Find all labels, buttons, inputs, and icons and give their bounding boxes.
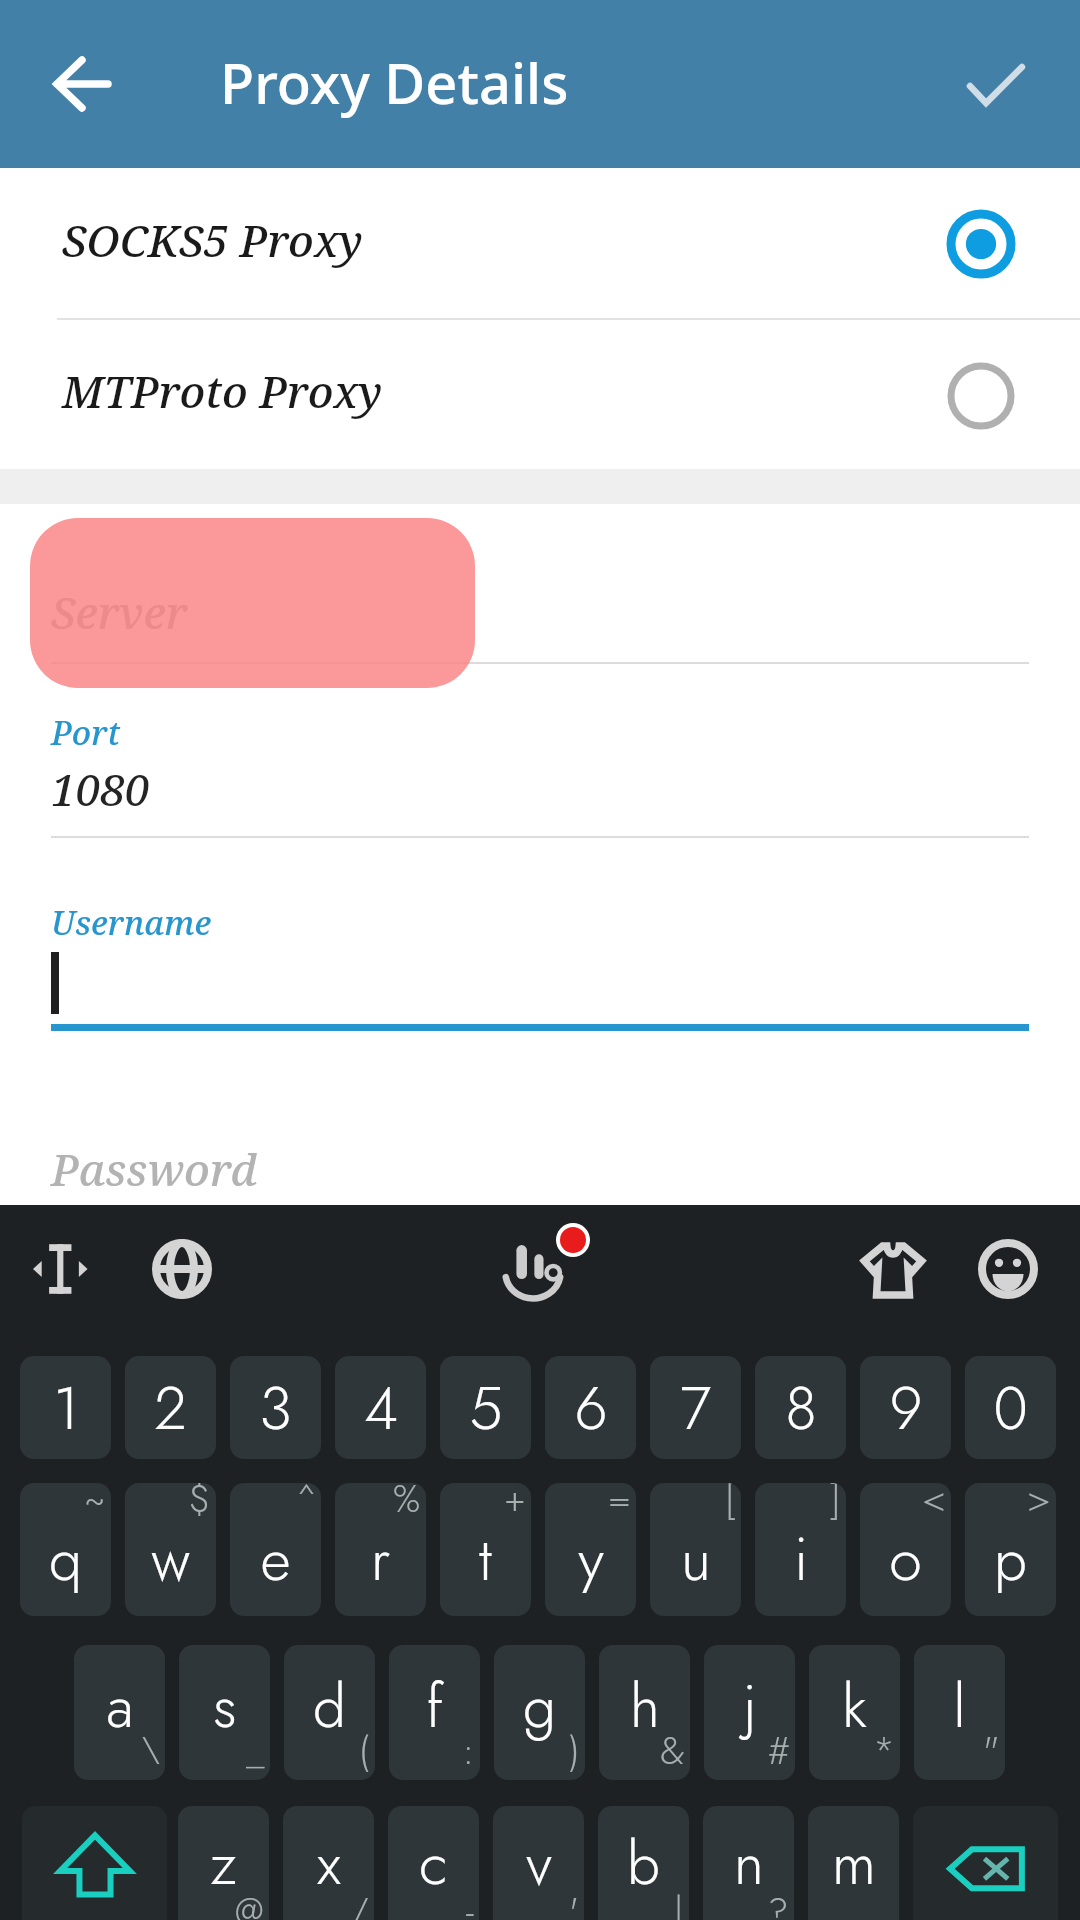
staticText: p [994,1517,1027,1602]
button[interactable]: MTProto Proxy [0,320,1080,470]
button[interactable]: c [388,1806,479,1920]
button[interactable]: 4 [335,1356,426,1459]
button[interactable]: f [389,1645,480,1780]
staticText: w [151,1517,190,1602]
button[interactable]: m [808,1806,899,1920]
button[interactable]: x [283,1806,374,1920]
staticText: ] [830,1483,841,1525]
staticText: 0 [993,1366,1028,1451]
staticText: a [106,1664,134,1749]
button[interactable]: n [703,1806,794,1920]
button[interactable]: o [860,1483,951,1616]
staticText: 3 [259,1366,292,1451]
button[interactable]: e [230,1483,321,1616]
staticText: b [627,1821,660,1906]
staticText: d [313,1664,346,1749]
button[interactable]: s [179,1645,270,1780]
button[interactable]: g [494,1645,585,1780]
staticText: > [1027,1483,1051,1525]
button[interactable]: t [440,1483,531,1616]
button[interactable]: Backspace [913,1806,1058,1920]
button[interactable]: 6 [545,1356,636,1459]
button[interactable]: Save [948,36,1044,132]
staticText: Username [51,900,212,945]
button[interactable]: Move cursor [22,1227,106,1311]
staticText: + [504,1483,526,1525]
button[interactable]: z [178,1806,269,1920]
staticText: q [49,1517,82,1602]
staticText: % [393,1483,421,1525]
button[interactable]: i [755,1483,846,1616]
button[interactable]: 0 [965,1356,1056,1459]
button[interactable]: l [914,1645,1005,1780]
button[interactable]: 5 [440,1356,531,1459]
staticText: e [260,1517,291,1602]
staticText: m [832,1821,876,1906]
button[interactable]: q [20,1483,111,1616]
staticText: r [371,1517,390,1602]
button[interactable]: w [125,1483,216,1616]
staticText: 4 [364,1366,398,1451]
staticText: & [660,1724,685,1777]
button[interactable]: Themes [851,1227,935,1311]
button[interactable]: 7 [650,1356,741,1459]
staticText: SOCKS5 Proxy [62,210,363,270]
button[interactable]: Back [36,36,132,132]
staticText: | [674,1885,684,1920]
button[interactable]: j [704,1645,795,1780]
button[interactable]: u [650,1483,741,1616]
staticText: s [213,1664,237,1749]
button[interactable]: a [74,1645,165,1780]
button[interactable]: v [493,1806,584,1920]
staticText: u [681,1517,711,1602]
button[interactable]: SOCKS5 Proxy [0,168,1080,318]
staticText: - [466,1885,474,1920]
staticText: 5 [469,1366,503,1451]
staticText: j [743,1664,757,1749]
button[interactable]: Shift [22,1806,167,1920]
staticText: MTProto Proxy [62,361,383,421]
button[interactable]: k [809,1645,900,1780]
staticText: v [526,1821,552,1906]
staticText: * [873,1724,895,1777]
staticText: " [983,1724,1000,1777]
staticText: 8 [785,1366,817,1451]
staticText: ^ [297,1483,316,1525]
button[interactable]: Keyboard settings [498,1223,590,1315]
staticText: 1080 [51,759,150,819]
button[interactable]: Emoji [966,1227,1050,1311]
staticText: ( [359,1724,370,1777]
staticText: x [317,1821,341,1906]
staticText: 2 [154,1366,187,1451]
staticText: Proxy Details [220,44,569,120]
button[interactable]: r [335,1483,426,1616]
staticText: / [350,1885,369,1920]
button[interactable]: d [284,1645,375,1780]
button[interactable]: p [965,1483,1056,1616]
button[interactable]: Change language [140,1227,224,1311]
staticText: [ [725,1483,736,1525]
staticText: g [523,1664,556,1749]
staticText: 9 [889,1366,923,1451]
button[interactable]: 9 [860,1356,951,1459]
button[interactable] [30,518,475,688]
button[interactable]: b [598,1806,689,1920]
staticText: l [953,1664,966,1749]
button[interactable]: y [545,1483,636,1616]
button[interactable]: h [599,1645,690,1780]
button[interactable]: 1 [20,1356,111,1459]
staticText: ) [569,1724,580,1777]
staticText: ? [768,1885,789,1920]
staticText: @ [235,1885,264,1920]
button[interactable]: 3 [230,1356,321,1459]
staticText: ~ [84,1483,106,1525]
staticText: y [578,1517,604,1602]
staticText: Port [51,710,121,755]
staticText: 7 [680,1366,711,1451]
staticText: \ [142,1724,160,1777]
staticText: o [889,1517,922,1602]
button[interactable]: 8 [755,1356,846,1459]
staticText: $ [189,1483,211,1525]
button[interactable]: 2 [125,1356,216,1459]
staticText: : [463,1724,475,1777]
